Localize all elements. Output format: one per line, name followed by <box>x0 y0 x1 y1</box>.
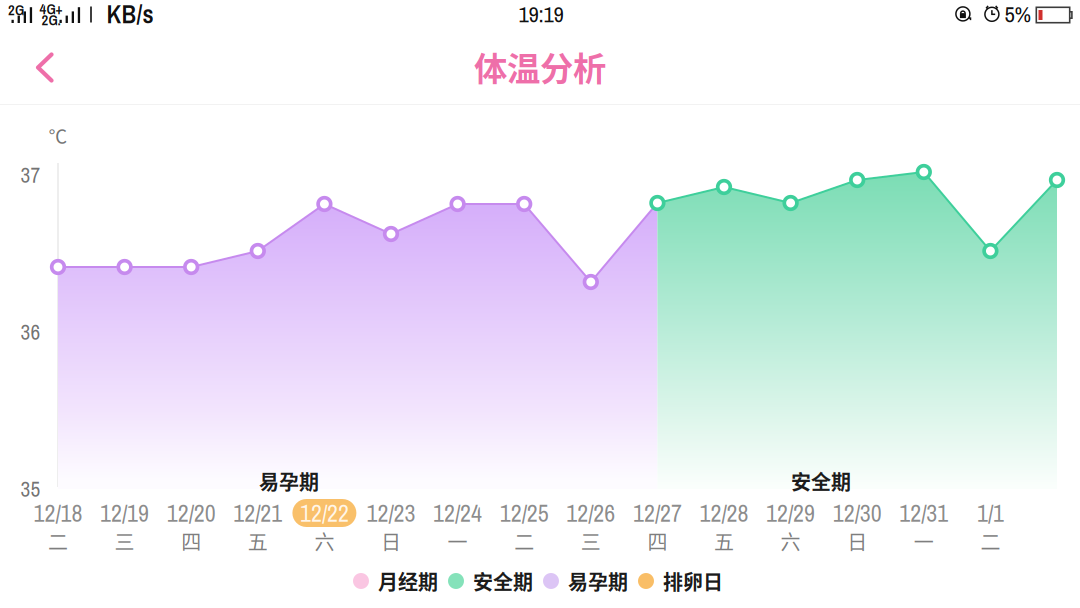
staticText: 12/27 <box>633 497 682 529</box>
staticText: 12/21 <box>233 497 282 529</box>
staticText: 37 <box>21 161 41 189</box>
staticText: 体温分析 <box>474 42 606 91</box>
staticText: 4G+ <box>39 0 62 19</box>
staticText: 36 <box>21 318 41 346</box>
button[interactable]: Back <box>0 31 73 104</box>
staticText: 三 <box>581 526 601 555</box>
staticText: 12/23 <box>366 497 415 529</box>
staticText: 5% <box>1004 0 1031 29</box>
staticText: 三 <box>115 526 135 555</box>
staticText: 12/24 <box>433 497 482 529</box>
staticText: 1/1 <box>977 497 1004 529</box>
staticText: 12/22 <box>300 497 349 529</box>
staticText: 五 <box>248 526 268 555</box>
staticText: 12/26 <box>566 497 615 529</box>
staticText: 一 <box>448 526 468 555</box>
staticText: 12/29 <box>766 497 815 529</box>
staticText: 2G. <box>41 10 60 30</box>
staticText: 2G <box>8 0 24 20</box>
staticText: 安全期 <box>473 566 533 595</box>
staticText: 六 <box>781 526 801 555</box>
staticText: 排卵日 <box>663 566 723 595</box>
staticText: 12/19 <box>100 497 149 529</box>
staticText: 月经期 <box>378 566 438 595</box>
staticText: 12/25 <box>500 497 549 529</box>
staticText: 12/31 <box>899 497 948 529</box>
staticText: 19:19 <box>518 0 563 29</box>
staticText: 日 <box>381 526 401 555</box>
staticText: 易孕期 <box>259 466 319 495</box>
staticText: 12/20 <box>167 497 216 529</box>
staticText: 易孕期 <box>568 566 628 595</box>
staticText: 二 <box>980 526 1000 555</box>
staticText: 二 <box>48 526 68 555</box>
staticText: KB/s <box>106 0 153 31</box>
staticText: 五 <box>714 526 734 555</box>
staticText: 12/18 <box>33 497 82 529</box>
staticText: ℃ <box>48 121 67 148</box>
staticText: 四 <box>181 526 201 555</box>
staticText: 一 <box>914 526 934 555</box>
staticText: 12/30 <box>833 497 882 529</box>
staticText: 六 <box>314 526 334 555</box>
staticText: 二 <box>514 526 534 555</box>
staticText: 35 <box>21 475 41 503</box>
staticText: 日 <box>847 526 867 555</box>
staticText: 四 <box>647 526 667 555</box>
staticText: 安全期 <box>791 466 851 495</box>
staticText: 12/28 <box>699 497 748 529</box>
